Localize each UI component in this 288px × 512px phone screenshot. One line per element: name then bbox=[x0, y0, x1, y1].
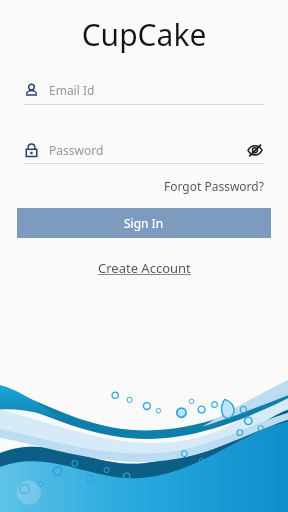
staticText: Create Account bbox=[98, 259, 191, 277]
staticText: Email Id bbox=[49, 82, 95, 98]
button[interactable]: Forgot Password? bbox=[162, 176, 266, 196]
button[interactable]: Password bbox=[24, 141, 264, 164]
staticText: CupCake bbox=[0, 14, 288, 55]
staticText: Password bbox=[49, 142, 104, 158]
staticText: Sign In bbox=[124, 215, 164, 231]
button[interactable]: Sign In bbox=[17, 208, 271, 238]
button[interactable]: Email Id bbox=[24, 82, 264, 105]
staticText: Forgot Password? bbox=[164, 178, 264, 194]
button[interactable]: Create Account bbox=[94, 256, 195, 280]
button[interactable]: Show password bbox=[246, 141, 264, 159]
